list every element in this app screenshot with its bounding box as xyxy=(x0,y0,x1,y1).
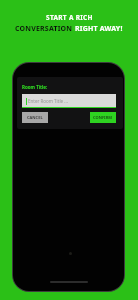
staticText: Enter Room Title ... xyxy=(28,98,68,104)
button[interactable]: CANCEL xyxy=(22,112,48,123)
staticText: CONFIRM xyxy=(93,115,113,120)
staticText: START A RICH xyxy=(46,13,93,22)
staticText: RIGHT AWAY! xyxy=(75,24,123,34)
staticText: CANCEL xyxy=(27,115,43,120)
staticText: CONVERSATION xyxy=(15,24,75,34)
staticText: Room Title: xyxy=(22,84,48,90)
button[interactable]: Enter Room Title ... xyxy=(22,94,116,108)
button[interactable]: CONFIRM xyxy=(90,112,116,123)
